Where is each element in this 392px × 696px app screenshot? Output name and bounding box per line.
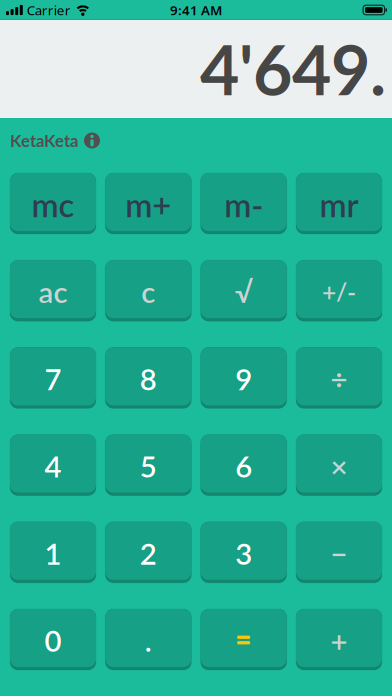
button[interactable]: 9 xyxy=(201,347,287,408)
staticText: Carrier xyxy=(27,1,71,19)
button[interactable]: equals xyxy=(201,609,287,670)
button[interactable]: +/- xyxy=(296,260,382,321)
staticText: 6 xyxy=(235,448,252,484)
button[interactable]: √ xyxy=(201,260,287,321)
button[interactable]: mc xyxy=(10,173,96,234)
button[interactable]: mr xyxy=(296,173,382,234)
staticText: 9 xyxy=(235,361,252,396)
staticText: ac xyxy=(38,274,67,309)
button[interactable]: 2 xyxy=(105,522,191,583)
button[interactable]: . xyxy=(105,609,191,670)
button[interactable]: 1 xyxy=(10,522,96,583)
staticText: m- xyxy=(224,185,263,224)
staticText: m+ xyxy=(125,185,171,224)
staticText: 5 xyxy=(140,448,157,484)
staticText: 8 xyxy=(140,361,157,396)
staticText: 4'649. xyxy=(200,28,386,110)
staticText: c xyxy=(141,274,155,309)
staticText: − xyxy=(330,536,347,571)
staticText: 3 xyxy=(235,536,252,571)
staticText: 2 xyxy=(140,536,157,571)
staticText: × xyxy=(330,448,347,484)
staticText: 4 xyxy=(44,448,61,484)
button[interactable]: m- xyxy=(201,173,287,234)
staticText: + xyxy=(330,623,347,658)
button[interactable]: 4 xyxy=(10,435,96,496)
button[interactable]: ÷ xyxy=(296,347,382,408)
staticText: +/- xyxy=(322,277,356,306)
staticText: . xyxy=(145,623,152,658)
staticText: mr xyxy=(319,185,358,224)
button[interactable]: 0 xyxy=(10,609,96,670)
staticText: 0 xyxy=(44,623,61,658)
button[interactable]: 5 xyxy=(105,435,191,496)
button[interactable]: 3 xyxy=(201,522,287,583)
staticText: KetaKeta xyxy=(10,130,78,150)
button[interactable]: About KetaKeta xyxy=(84,132,100,148)
button[interactable]: 8 xyxy=(105,347,191,408)
staticText: mc xyxy=(31,185,74,224)
staticText: 9:41 AM xyxy=(170,1,222,19)
button[interactable]: 7 xyxy=(10,347,96,408)
button[interactable]: + xyxy=(296,609,382,670)
button[interactable]: KetaKeta xyxy=(10,130,78,150)
button[interactable]: − xyxy=(296,522,382,583)
button[interactable]: × xyxy=(296,435,382,496)
staticText: 1 xyxy=(44,536,61,571)
staticText: 7 xyxy=(44,361,61,396)
button[interactable]: m+ xyxy=(105,173,191,234)
button[interactable]: ac xyxy=(10,260,96,321)
button[interactable]: 6 xyxy=(201,435,287,496)
button[interactable]: c xyxy=(105,260,191,321)
staticText: √ xyxy=(235,274,253,309)
staticText: ÷ xyxy=(330,361,347,396)
